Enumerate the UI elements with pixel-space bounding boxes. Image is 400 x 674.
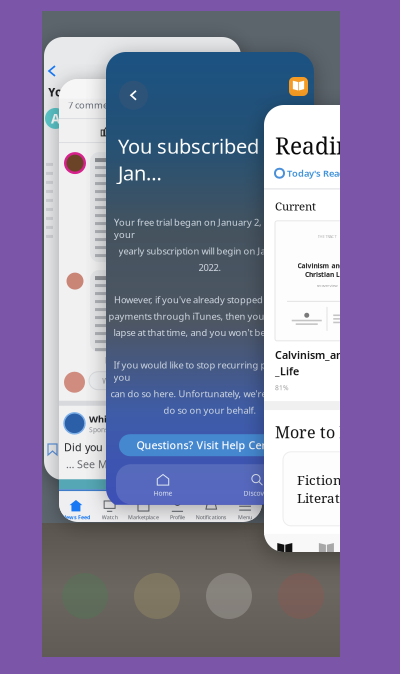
staticText: Notifications xyxy=(196,514,227,521)
staticText: You subscribed on Jan… xyxy=(118,133,288,186)
staticText: 2022. xyxy=(198,261,221,273)
staticText: do so on your behalf. xyxy=(163,404,256,416)
staticText: 81% xyxy=(275,383,289,392)
button[interactable]: Back xyxy=(44,37,64,84)
staticText: Write a comment… xyxy=(70,112,151,125)
staticText: Home xyxy=(153,489,172,498)
button[interactable]: Discover xyxy=(210,474,304,498)
staticText: Christian Life xyxy=(305,270,349,279)
staticText: Literature xyxy=(297,489,361,507)
staticText: yearly subscription will begin on Januar… xyxy=(118,245,301,257)
staticText: Current xyxy=(275,198,316,214)
staticText: Discover xyxy=(243,489,270,498)
staticText: lapse at that time, and you won't be cha… xyxy=(113,326,306,339)
staticText: _Life xyxy=(275,364,299,378)
button[interactable]: Profile xyxy=(160,500,194,521)
button[interactable]: Notifications xyxy=(194,500,228,521)
staticText: Did you miss the speech? xyxy=(64,440,193,454)
button[interactable]: Menu xyxy=(228,500,262,521)
staticText: payments through iTunes, then your acces… xyxy=(108,310,311,322)
staticText: A xyxy=(51,110,60,127)
staticText: Sponsored xyxy=(89,425,123,434)
button[interactable]: Reading Now xyxy=(264,543,306,565)
staticText: Marketplace xyxy=(128,514,159,521)
staticText: Watch xyxy=(102,514,118,521)
staticText: However, if you've already stopped recur… xyxy=(114,293,306,306)
staticText: can do so here. Unfortunately, we're una… xyxy=(110,387,309,400)
staticText: White House xyxy=(89,413,149,425)
button[interactable]: Watch xyxy=(93,500,127,521)
staticText: If you would like to stop recurring paym… xyxy=(113,359,306,383)
staticText: Questions? Visit Help Center xyxy=(136,438,283,452)
staticText: Calvinism_and_Christian xyxy=(275,348,400,362)
staticText: Reading Now xyxy=(275,130,400,161)
staticText: Calvinism and the xyxy=(297,261,356,270)
button[interactable]: Library xyxy=(306,543,347,565)
button[interactable]: Questions? Visit Help Center xyxy=(106,434,314,456)
button[interactable]: Home xyxy=(116,474,210,498)
staticText: Your free trial began on January 2, 2021… xyxy=(114,216,306,241)
staticText: 7 comments xyxy=(68,99,121,111)
staticText: Write… xyxy=(102,375,128,386)
staticText: … See More xyxy=(66,457,124,471)
button[interactable]: Back xyxy=(119,81,148,110)
staticText: News Feed xyxy=(62,514,90,521)
staticText: Fiction & xyxy=(297,471,355,489)
staticText: Profile xyxy=(170,514,185,521)
staticText: Like xyxy=(105,355,120,366)
staticText: an overview xyxy=(316,283,337,288)
button[interactable]: Marketplace xyxy=(127,500,160,521)
staticText: Your Post xyxy=(48,84,105,100)
staticText: Today's Reading Goal xyxy=(287,167,383,179)
staticText: More to Explore xyxy=(275,421,399,443)
staticText: Menu xyxy=(238,514,252,521)
button[interactable]: News Feed xyxy=(59,500,93,521)
staticText: THE TRACT xyxy=(317,234,336,239)
